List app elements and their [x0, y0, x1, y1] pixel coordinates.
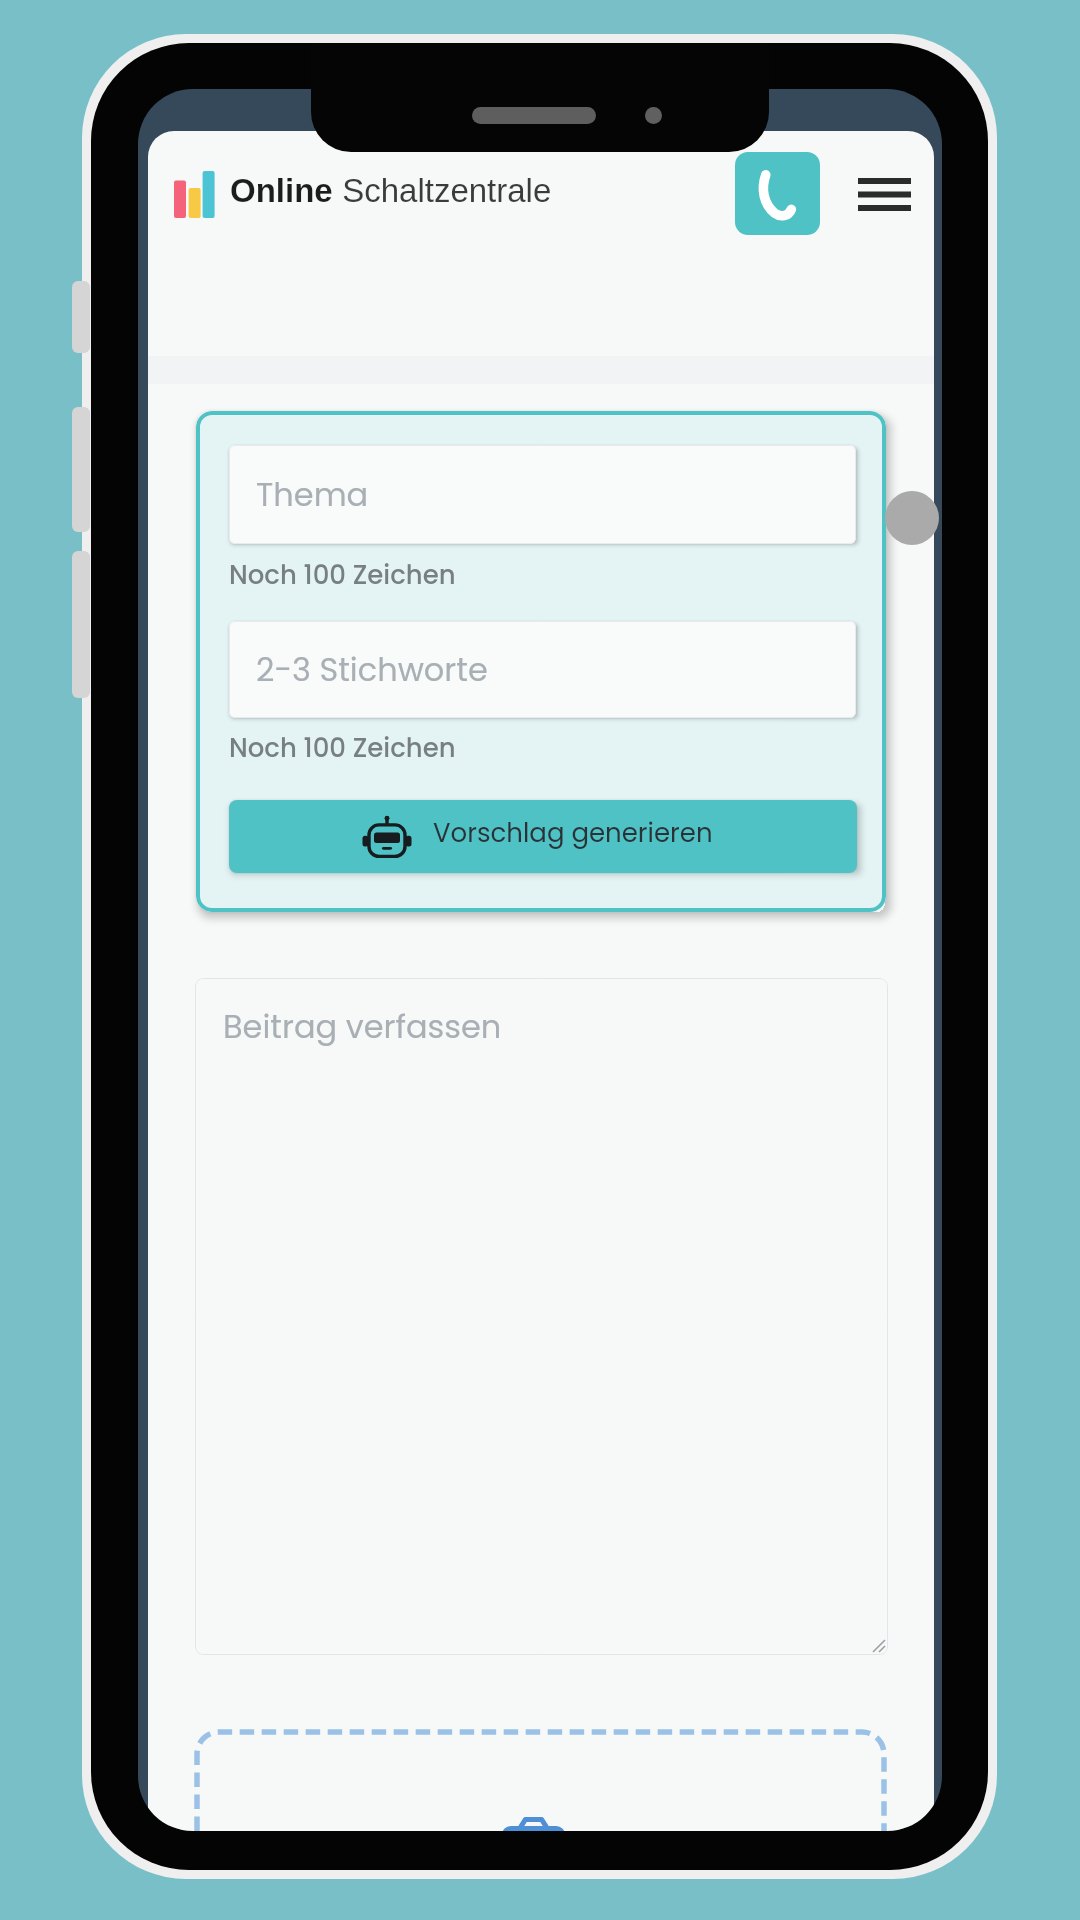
- staticText: Thema: [256, 472, 369, 517]
- button[interactable]: Bild hochladen: [197, 1732, 884, 1831]
- button[interactable]: Beitrag verfassen: [195, 978, 888, 1655]
- button[interactable]: Vorschlag generieren: [229, 800, 857, 873]
- staticText: 2-3 Stichworte: [256, 647, 488, 692]
- button[interactable]: Menü: [845, 160, 923, 228]
- staticText: Online: [230, 172, 333, 209]
- staticText: Vorschlag generieren: [433, 815, 713, 851]
- staticText: Beitrag verfassen: [223, 1004, 502, 1049]
- button[interactable]: Anrufen: [735, 152, 820, 235]
- button[interactable]: 2-3 Stichworte: [229, 621, 856, 718]
- staticText: Noch 100 Zeichen: [229, 557, 456, 593]
- staticText: Schaltzentrale: [333, 172, 552, 209]
- button[interactable]: Thema: [229, 445, 856, 544]
- staticText: Noch 100 Zeichen: [229, 730, 456, 766]
